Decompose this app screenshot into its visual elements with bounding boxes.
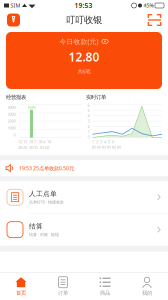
staticText: 4000 [7,105,15,110]
staticText: 结算 · 对账 · 提现 [29,232,59,237]
button[interactable]: 订单 [42,273,84,300]
staticText: SIM [10,2,20,9]
staticText: 共6笔 [77,68,90,75]
staticText: 1 2 3 4 5 6 [92,139,114,144]
staticText: 19:53 25点单收款0.50元 [19,165,74,172]
staticText: 3 [87,118,89,124]
staticText: 1 [87,129,89,134]
staticText: 0 [87,134,89,140]
staticText: 首页 [16,290,26,296]
button[interactable]: 商品 [84,273,126,300]
staticText: 4280 [27,104,35,110]
staticText: 4 [87,113,89,118]
staticText: 订单 [58,290,68,296]
button[interactable]: 19:53 25点单收款0.50元 [0,160,168,176]
staticText: 28 29 30 31 01 02 [18,145,49,150]
staticText: 2000 [7,118,15,124]
button[interactable]: 人工点单 [0,181,168,213]
staticText: 结算 [29,222,43,230]
staticText: 6 [87,102,89,108]
staticText: 今日收款(元) [59,37,98,46]
staticText: 19:53 [74,1,92,10]
staticText: 叮叮收银 [66,14,102,26]
staticText: 12.80 [68,49,99,65]
staticText: 0 [13,132,15,137]
button[interactable]: 我的 [126,273,168,300]
staticText: 点单打印 · 快捷收款 [29,199,64,205]
staticText: 人工点单 [29,190,57,198]
staticText: 经营报表 [6,94,26,101]
staticText: 45% [143,2,153,9]
staticText: 1000 [7,125,15,131]
button[interactable]: 首页 [0,273,42,300]
staticText: 12 15 18 7 18.4 18 [18,139,51,144]
staticText: 实时订单 [86,94,106,101]
staticText: 时 时 时 时 时 时 [92,145,121,150]
staticText: 3000 [7,111,15,117]
button[interactable]: 叮叮收银 [7,13,20,26]
button[interactable]: 结算 [0,214,168,246]
staticText: 2 [87,124,89,129]
staticText: 我的 [142,290,152,296]
staticText: 商品 [100,290,110,296]
staticText: 5 [87,108,89,113]
button[interactable]: 扫一扫 [148,14,161,26]
